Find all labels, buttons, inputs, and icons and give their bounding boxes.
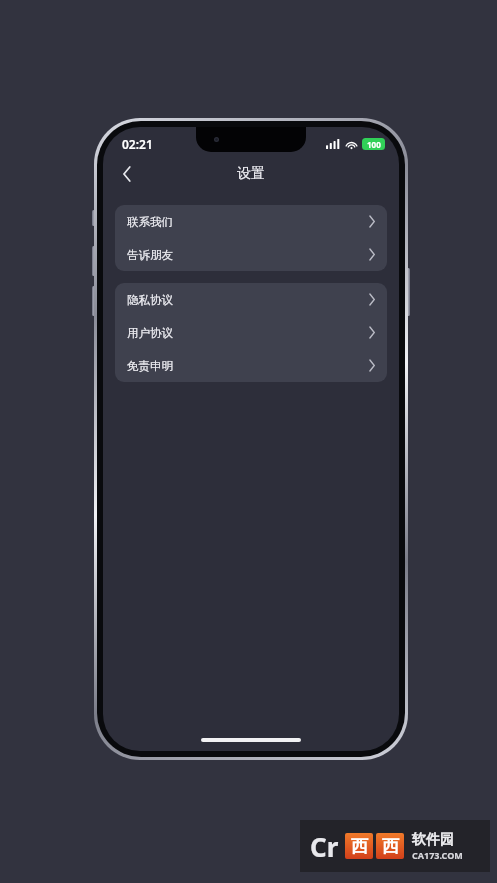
staticText: 告诉朋友 xyxy=(127,248,173,262)
button[interactable]: Back xyxy=(111,158,143,190)
staticText: 设置 xyxy=(237,165,265,183)
button[interactable]: 用户协议 xyxy=(115,316,387,349)
staticText: 100 xyxy=(367,139,381,150)
staticText: 软件园 xyxy=(412,831,454,849)
button[interactable]: 免责申明 xyxy=(115,349,387,382)
staticText: 免责申明 xyxy=(127,359,173,373)
button[interactable]: 告诉朋友 xyxy=(115,238,387,271)
staticText: 西 xyxy=(351,836,368,857)
button[interactable]: 隐私协议 xyxy=(115,283,387,316)
button[interactable]: 联系我们 xyxy=(115,205,387,238)
staticText: 02:21 xyxy=(122,136,153,152)
staticText: 用户协议 xyxy=(127,326,173,340)
staticText: CA173.COM xyxy=(412,849,463,861)
staticText: Cr xyxy=(310,829,339,864)
staticText: 西 xyxy=(382,836,399,857)
staticText: 隐私协议 xyxy=(127,293,173,307)
staticText: 联系我们 xyxy=(127,215,173,229)
